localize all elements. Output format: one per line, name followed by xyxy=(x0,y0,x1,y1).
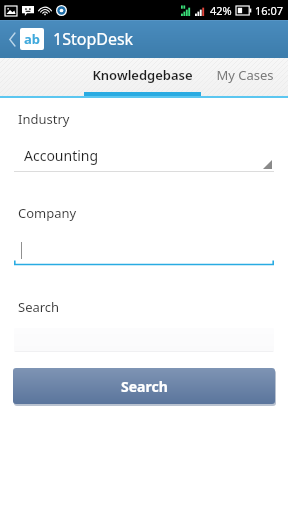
staticText: Company xyxy=(18,204,77,222)
staticText: Search xyxy=(18,298,60,316)
staticText: ab xyxy=(24,30,41,48)
staticText: 1StopDesk xyxy=(53,28,134,50)
staticText: 42% xyxy=(210,3,232,18)
staticText: Knowledgebase xyxy=(92,66,193,84)
staticText: My Cases xyxy=(216,66,274,84)
staticText: Accounting xyxy=(24,146,99,165)
button[interactable]: Search xyxy=(13,368,275,404)
staticText: 16:07 xyxy=(255,3,284,18)
button[interactable]: ab xyxy=(20,28,44,50)
staticText: Industry xyxy=(18,110,70,128)
button[interactable]: Accounting xyxy=(14,142,274,172)
button[interactable]: Knowledgebase xyxy=(84,58,201,98)
button[interactable]: My Cases xyxy=(201,58,288,98)
staticText: Search xyxy=(121,377,168,396)
button[interactable] xyxy=(14,236,274,266)
button[interactable]: Navigate up xyxy=(4,20,20,58)
